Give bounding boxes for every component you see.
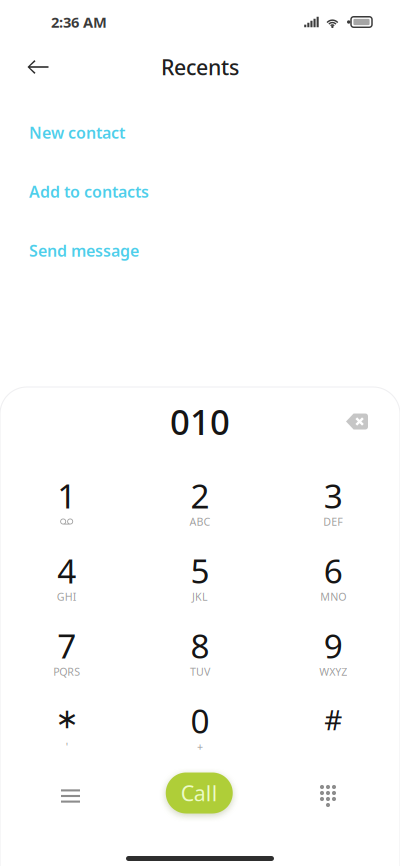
button[interactable]: Delete xyxy=(334,400,380,446)
button[interactable]: 4 xyxy=(0,534,133,609)
button[interactable]: 8 xyxy=(133,609,267,684)
button[interactable]: Back xyxy=(17,44,59,90)
staticText: Recents xyxy=(161,53,239,81)
staticText: ABC xyxy=(189,514,210,529)
staticText: GHI xyxy=(57,589,77,604)
staticText: WXYZ xyxy=(319,664,347,679)
staticText: PQRS xyxy=(53,664,80,679)
button[interactable]: 0 xyxy=(133,684,267,759)
staticText: JKL xyxy=(192,589,208,604)
staticText: 0 xyxy=(190,698,209,743)
button[interactable]: Call log xyxy=(40,766,100,820)
staticText: 8 xyxy=(190,623,209,668)
button[interactable]: Keypad xyxy=(298,766,358,820)
staticText: ∗ xyxy=(55,703,78,734)
button[interactable]: Send message xyxy=(0,221,400,280)
staticText: New contact xyxy=(29,122,125,143)
staticText: 1 xyxy=(57,473,76,518)
button[interactable]: Call xyxy=(166,772,233,813)
staticText: 2:36 AM xyxy=(51,12,107,32)
staticText: + xyxy=(197,739,203,754)
staticText: 4 xyxy=(57,548,76,593)
staticText: ' xyxy=(66,739,68,754)
button[interactable]: # xyxy=(267,684,400,759)
staticText: TUV xyxy=(190,664,210,679)
staticText: 010 xyxy=(170,398,230,444)
staticText: 9 xyxy=(324,623,343,668)
button[interactable]: 6 xyxy=(267,534,400,609)
button[interactable]: 3 xyxy=(267,459,400,534)
staticText: MNO xyxy=(320,589,346,604)
staticText: Call xyxy=(181,779,218,807)
button[interactable]: New contact xyxy=(0,103,400,162)
staticText: 6 xyxy=(324,548,343,593)
button[interactable]: 5 xyxy=(133,534,267,609)
staticText: 5 xyxy=(190,548,209,593)
staticText: 2 xyxy=(190,473,209,518)
button[interactable]: 9 xyxy=(267,609,400,684)
staticText: # xyxy=(324,701,342,738)
staticText: DEF xyxy=(323,514,343,529)
staticText: 3 xyxy=(324,473,343,518)
staticText: 7 xyxy=(57,623,76,668)
staticText: Add to contacts xyxy=(29,181,149,202)
staticText: Send message xyxy=(29,240,139,261)
button[interactable]: ∗ xyxy=(0,684,133,759)
button[interactable]: 2 xyxy=(133,459,267,534)
button[interactable]: Add to contacts xyxy=(0,162,400,221)
button[interactable]: 7 xyxy=(0,609,133,684)
button[interactable]: 1 xyxy=(0,459,133,534)
